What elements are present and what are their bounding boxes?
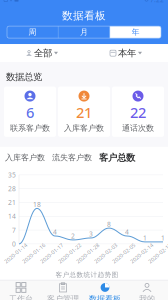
- staticText: 1: [143, 233, 147, 242]
- button[interactable]: 6: [4, 87, 56, 137]
- staticText: 2020-01-17: [38, 250, 66, 257]
- staticText: 数据看板: [89, 294, 121, 300]
- staticText: 4: [125, 228, 129, 236]
- staticText: 1: [161, 233, 165, 242]
- staticText: 35: [8, 170, 16, 179]
- staticText: 21: [8, 198, 16, 207]
- button[interactable]: 年: [110, 26, 161, 38]
- staticText: 入库客户数: [64, 123, 104, 133]
- button[interactable]: 工作台: [0, 280, 42, 300]
- staticText: 2020-01-28: [74, 250, 102, 257]
- staticText: 入库客户数: [5, 153, 45, 162]
- staticText: 2020-01-22: [56, 250, 84, 257]
- staticText: 8: [107, 220, 111, 229]
- button[interactable]: 流失客户数: [52, 153, 92, 162]
- staticText: 22: [130, 103, 146, 122]
- staticText: 2020-02-14: [128, 250, 156, 257]
- staticText: 月: [80, 27, 88, 37]
- staticText: 21: [76, 103, 92, 122]
- button[interactable]: 客户管理: [42, 280, 84, 300]
- staticText: 通话次数: [122, 123, 154, 133]
- staticText: 工作台: [9, 294, 33, 300]
- button[interactable]: 本年: [84, 44, 168, 62]
- staticText: 我的: [139, 294, 155, 300]
- staticText: 流失客户数: [52, 153, 92, 162]
- staticText: 28: [8, 184, 16, 193]
- button[interactable]: 数据看板: [84, 280, 126, 300]
- staticText: 14: [8, 212, 16, 221]
- staticText: 客户总数统计趋势图: [55, 271, 118, 279]
- staticText: 周: [28, 27, 36, 37]
- staticText: 2020-02-05: [110, 250, 138, 257]
- staticText: 2020-01-16: [20, 250, 48, 257]
- staticText: 数据看板: [62, 9, 106, 22]
- staticText: 18: [33, 200, 41, 209]
- button[interactable]: 22: [112, 87, 164, 137]
- staticText: 客户管理: [47, 294, 79, 300]
- staticText: 6: [26, 103, 34, 122]
- button[interactable]: 入库客户数: [5, 153, 45, 162]
- button[interactable]: 月: [58, 26, 109, 38]
- staticText: 本年: [118, 47, 136, 59]
- button[interactable]: 21: [58, 87, 110, 137]
- staticText: 7:22: [150, 0, 164, 4]
- staticText: 2020-01-14: [2, 250, 30, 257]
- staticText: 7: [12, 226, 16, 235]
- staticText: 2020-02-03: [92, 250, 120, 257]
- staticText: 2: [71, 231, 75, 240]
- staticText: 年: [131, 27, 139, 37]
- staticText: 客户总数: [99, 152, 135, 163]
- staticText: 联系客户数: [10, 123, 50, 133]
- button[interactable]: 全部: [0, 44, 84, 62]
- staticText: 2020-02-15: [146, 250, 168, 257]
- staticText: 全部: [34, 47, 52, 59]
- staticText: 3: [89, 229, 93, 238]
- button[interactable]: 我的: [126, 280, 168, 300]
- staticText: 0: [12, 239, 16, 248]
- staticText: 数据总览: [6, 71, 42, 83]
- button[interactable]: 周: [7, 26, 58, 38]
- staticText: 4: [53, 228, 57, 236]
- button[interactable]: 客户总数: [99, 152, 135, 163]
